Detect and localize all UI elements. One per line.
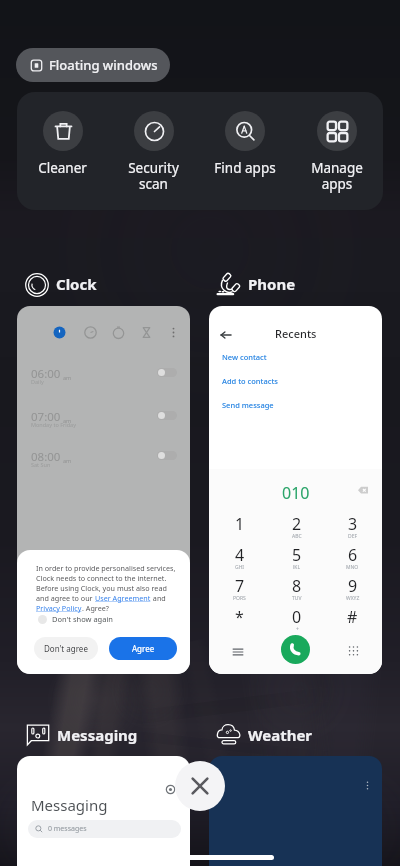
staticText: MNO — [346, 564, 359, 569]
staticText: Add to contacts — [222, 376, 278, 386]
button[interactable]: Security scan — [108, 92, 199, 210]
staticText: ABC — [292, 533, 302, 538]
staticText: User Agreement — [95, 593, 151, 603]
staticText: Don't show again — [52, 614, 113, 624]
staticText: 06:00 — [31, 366, 61, 382]
button[interactable]: 06:00 — [17, 306, 190, 674]
staticText: Daily — [31, 378, 44, 385]
staticText: WXYZ — [346, 595, 360, 600]
staticText: 010 — [282, 482, 310, 504]
staticText: Floating windows — [49, 56, 158, 74]
button[interactable]: Keypad options — [231, 645, 245, 659]
button[interactable]: Backspace — [358, 485, 368, 495]
staticText: 4 — [235, 544, 245, 566]
staticText: . Agree? — [82, 603, 109, 613]
staticText: 07:00 — [31, 409, 61, 425]
staticText: Messaging — [31, 795, 108, 815]
staticText: Cleaner — [38, 159, 87, 177]
button[interactable]: 6 — [337, 544, 368, 571]
button[interactable]: 3 — [337, 513, 368, 540]
staticText: Phone — [248, 274, 296, 294]
button[interactable]: Toggle alarm 08:00 — [157, 451, 177, 460]
staticText: Security scan — [128, 159, 179, 193]
staticText: + — [296, 626, 299, 631]
staticText: Sat Sun — [31, 461, 51, 468]
staticText: 0 — [292, 606, 302, 628]
staticText: Find apps — [214, 159, 276, 177]
staticText: Don't agree — [44, 643, 88, 654]
button[interactable]: Agree — [109, 637, 177, 660]
staticText: 7 — [235, 575, 245, 597]
button[interactable]: More options — [209, 756, 382, 866]
staticText: and agree to our — [36, 593, 95, 603]
staticText: 0 messages — [48, 824, 87, 834]
staticText: Agree — [132, 643, 155, 654]
button[interactable]: 4 — [224, 544, 255, 571]
staticText: # — [347, 606, 358, 628]
staticText: Manage apps — [311, 159, 363, 193]
staticText: PQRS — [233, 595, 246, 600]
staticText: * — [235, 606, 244, 628]
staticText: Weather — [248, 725, 313, 745]
staticText: Monday to Friday — [31, 421, 76, 428]
button[interactable]: 1 — [224, 513, 255, 540]
staticText: DEF — [348, 533, 358, 538]
button[interactable]: * — [224, 606, 255, 633]
staticText: and — [151, 593, 166, 603]
button[interactable]: 8 — [281, 575, 312, 602]
staticText: New contact — [222, 352, 267, 362]
button[interactable]: 9 — [337, 575, 368, 602]
staticText: 08:00 — [31, 449, 61, 465]
staticText: 6 — [348, 544, 358, 566]
button[interactable]: 7 — [224, 575, 255, 602]
button[interactable]: Toggle alarm 07:00 — [157, 411, 177, 420]
button[interactable]: 0 — [281, 606, 312, 633]
button[interactable]: More options — [362, 780, 373, 791]
staticText: In order to provide personalised service… — [36, 563, 176, 573]
button[interactable]: 2 — [281, 513, 312, 540]
button[interactable]: Call — [281, 635, 310, 664]
staticText: am — [63, 457, 72, 464]
button[interactable]: Find apps — [199, 92, 291, 210]
staticText: Privacy Policy — [36, 603, 82, 613]
staticText: GHI — [235, 564, 245, 569]
button[interactable]: Back — [215, 324, 237, 346]
button[interactable]: Close all apps — [175, 761, 225, 811]
button[interactable]: Toggle alarm 06:00 — [157, 368, 177, 377]
staticText: TUV — [292, 595, 302, 600]
staticText: Before using Clock, you must also read — [36, 583, 167, 593]
staticText: 2 — [292, 513, 302, 535]
staticText: am — [63, 374, 72, 381]
button[interactable]: 0 messages — [28, 820, 181, 838]
button[interactable]: Floating windows — [16, 48, 170, 82]
staticText: 5 — [292, 544, 302, 566]
staticText: am — [63, 417, 72, 424]
staticText: 8 — [292, 575, 302, 597]
staticText: JKL — [293, 564, 301, 569]
button[interactable]: # — [337, 606, 368, 633]
button[interactable]: Don't agree — [34, 637, 98, 660]
staticText: Clock needs to connect to the internet. — [36, 573, 167, 583]
button[interactable]: Back — [209, 306, 382, 674]
staticText: Clock — [56, 274, 97, 294]
button[interactable]: Manage apps — [291, 92, 383, 210]
staticText: Messaging — [57, 725, 138, 745]
staticText: Recents — [275, 326, 317, 341]
button[interactable]: Cleaner — [17, 92, 108, 210]
staticText: Send message — [222, 400, 274, 410]
button[interactable]: 5 — [281, 544, 312, 571]
button[interactable]: Messaging — [17, 756, 190, 866]
staticText: 1 — [235, 513, 245, 535]
staticText: 3 — [348, 513, 358, 535]
button[interactable]: Dialpad — [347, 645, 360, 658]
staticText: 9 — [348, 575, 358, 597]
